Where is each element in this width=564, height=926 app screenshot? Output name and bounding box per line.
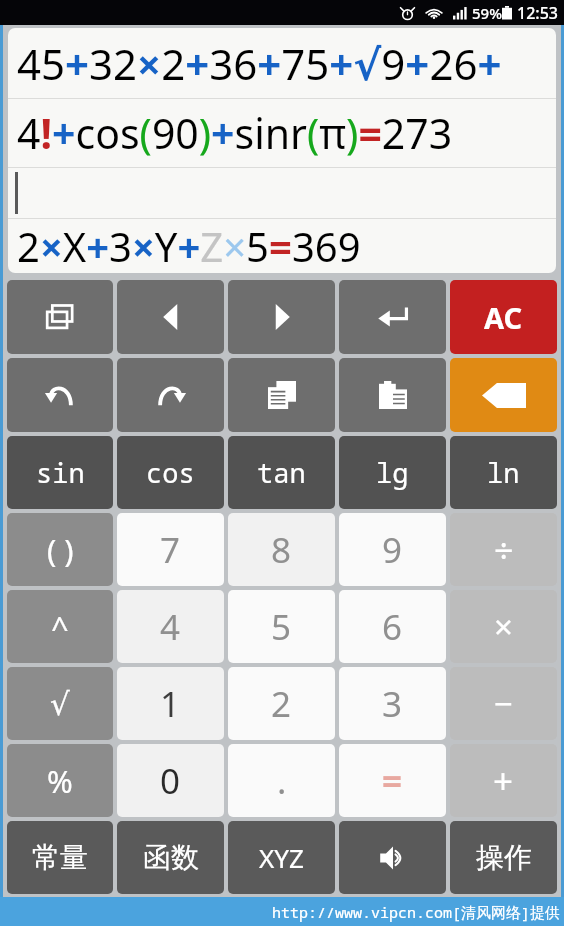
button[interactable]: lg	[339, 436, 446, 509]
staticText: 8	[271, 526, 292, 574]
staticText: ( )	[47, 529, 74, 571]
button[interactable]: 6	[339, 590, 446, 663]
button[interactable]: ÷	[450, 513, 557, 586]
staticText: +	[493, 757, 514, 805]
staticText: 59%	[472, 3, 502, 23]
staticText: XYZ	[259, 840, 304, 875]
button[interactable]: +	[450, 744, 557, 817]
button[interactable]: New window	[7, 280, 113, 354]
button[interactable]: ×	[450, 590, 557, 663]
staticText: ÷	[494, 527, 514, 573]
button[interactable]: ^	[7, 590, 113, 663]
staticText: 6	[382, 603, 403, 651]
staticText: lg	[376, 454, 409, 491]
staticText: 4!+cos(90)+sinr(π)=273	[17, 105, 453, 161]
button[interactable]: 常量	[7, 821, 113, 894]
button[interactable]: cos	[117, 436, 224, 509]
button[interactable]: %	[7, 744, 113, 817]
staticText: tan	[257, 454, 306, 491]
staticText: 7	[160, 526, 181, 574]
button[interactable]: 操作	[450, 821, 557, 894]
button[interactable]: AC	[450, 280, 557, 354]
button[interactable]: Move right	[228, 280, 335, 354]
staticText: ln	[487, 454, 520, 491]
staticText: 45+32×2+36+75+√9+26+	[17, 35, 502, 92]
staticText: 操作	[476, 840, 532, 875]
button[interactable]: Redo	[117, 358, 224, 432]
staticText: −	[494, 681, 513, 726]
button[interactable]: ( )	[7, 513, 113, 586]
staticText: 5	[271, 603, 292, 651]
staticText: √	[50, 686, 70, 722]
button[interactable]: Enter	[339, 280, 446, 354]
button[interactable]: 9	[339, 513, 446, 586]
staticText: 2×X+3×Y+Z×5=369	[17, 219, 361, 273]
staticText: AC	[484, 298, 523, 337]
button[interactable]: Move left	[117, 280, 224, 354]
button[interactable]: tan	[228, 436, 335, 509]
staticText: %	[47, 760, 73, 802]
staticText: 9	[382, 526, 403, 574]
staticText: 3	[382, 680, 403, 728]
staticText: ^	[51, 606, 69, 648]
button[interactable]: 8	[228, 513, 335, 586]
button[interactable]: 2	[228, 667, 335, 740]
button[interactable]: √	[7, 667, 113, 740]
staticText: 常量	[32, 840, 88, 875]
button[interactable]: 1	[117, 667, 224, 740]
button[interactable]: Copy	[228, 358, 335, 432]
button[interactable]: =	[339, 744, 446, 817]
button[interactable]: 7	[117, 513, 224, 586]
button[interactable]: 函数	[117, 821, 224, 894]
staticText: ×	[494, 604, 513, 649]
button[interactable]: Backspace	[450, 358, 557, 432]
staticText: http://www.vipcn.com[清风网络]提供	[272, 902, 561, 922]
button[interactable]: Sound	[339, 821, 446, 894]
staticText: 0	[160, 757, 181, 805]
staticText: sin	[36, 454, 85, 491]
staticText: 4	[160, 603, 181, 651]
button[interactable]: Undo	[7, 358, 113, 432]
staticText: cos	[146, 454, 195, 491]
button[interactable]: .	[228, 744, 335, 817]
staticText: 12:53	[517, 2, 558, 24]
staticText: .	[277, 757, 287, 805]
staticText: 函数	[143, 840, 199, 875]
button[interactable]: 3	[339, 667, 446, 740]
staticText: =	[382, 757, 403, 805]
staticText: 2	[271, 680, 292, 728]
button[interactable]: Paste	[339, 358, 446, 432]
button[interactable]: ln	[450, 436, 557, 509]
staticText: 1	[160, 680, 181, 728]
button[interactable]: 0	[117, 744, 224, 817]
button[interactable]: 4	[117, 590, 224, 663]
button[interactable]: 5	[228, 590, 335, 663]
button[interactable]: XYZ	[228, 821, 335, 894]
button[interactable]: −	[450, 667, 557, 740]
button[interactable]: sin	[7, 436, 113, 509]
